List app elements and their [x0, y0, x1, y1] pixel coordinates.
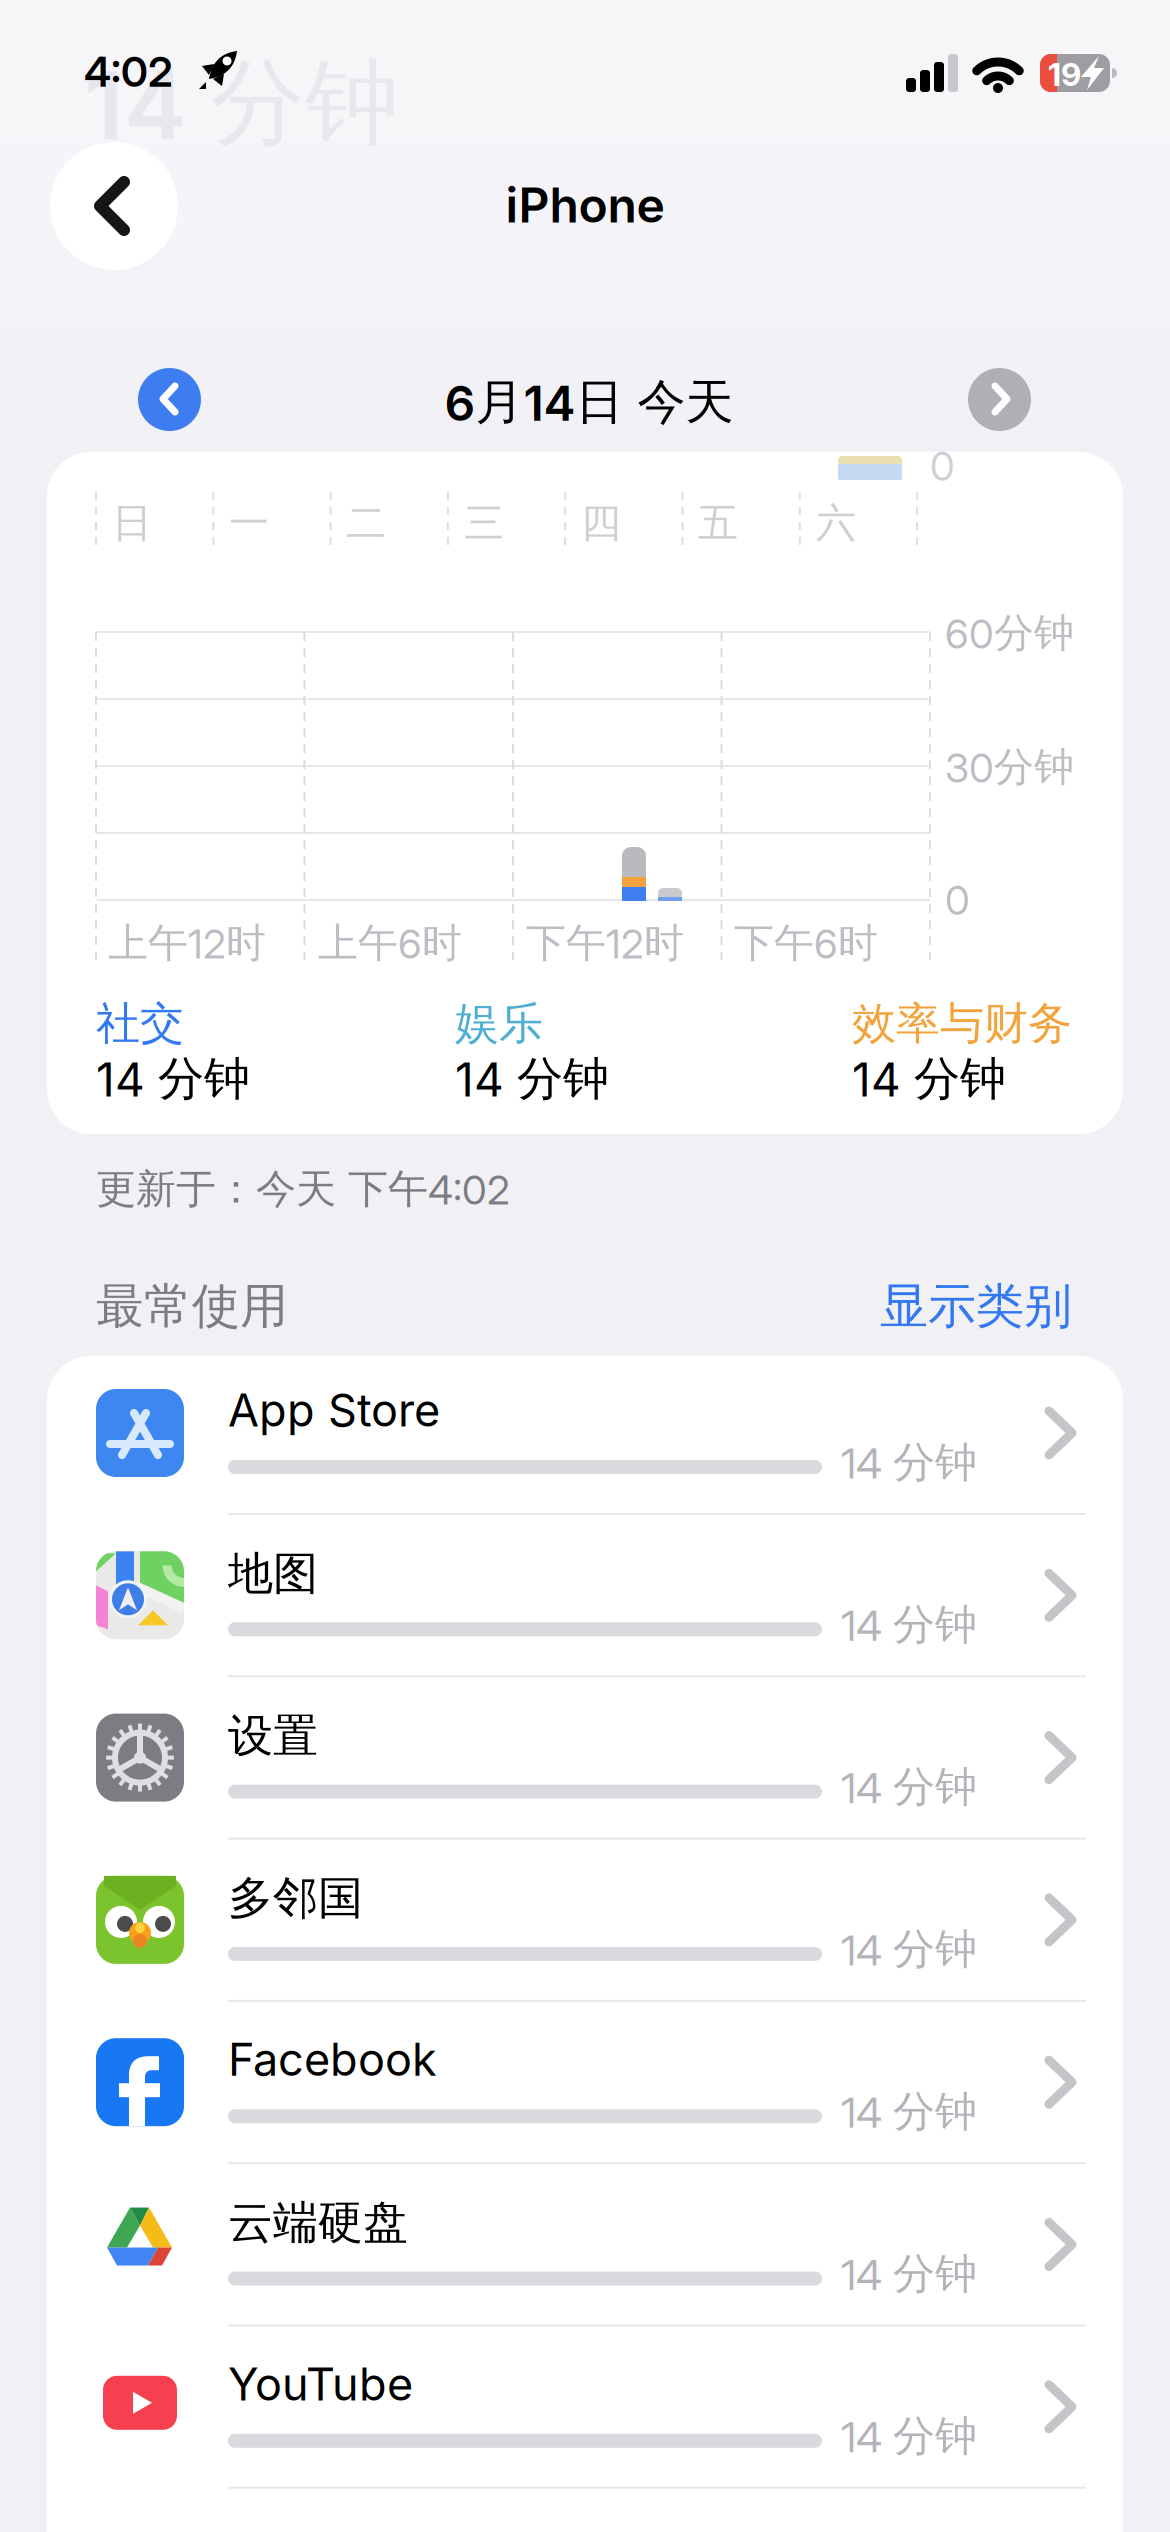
staticText: 设置	[228, 1708, 318, 1764]
staticText: 上午6时	[318, 918, 462, 968]
staticText: 14 分钟	[841, 2410, 977, 2463]
button[interactable]: 后一天	[968, 368, 1031, 431]
button[interactable]: App Store	[47, 1352, 1123, 1514]
staticText: 30分钟	[945, 742, 1074, 792]
button[interactable]: 返回	[50, 142, 178, 270]
staticText: 二	[346, 498, 386, 548]
staticText: 14 分钟	[841, 1436, 977, 1489]
staticText: 60分钟	[945, 608, 1074, 658]
staticText: App Store	[228, 1383, 440, 1437]
button[interactable]: Facebook	[47, 2001, 1123, 2163]
button[interactable]: 前一天	[138, 368, 201, 431]
staticText: 19	[1048, 55, 1081, 94]
staticText: 14 分钟	[455, 1050, 609, 1108]
staticText: 地图	[228, 1545, 318, 1602]
staticText: 14 分钟	[852, 1050, 1006, 1108]
staticText: 六	[816, 498, 856, 548]
staticText: 下午12时	[526, 918, 684, 968]
staticText: 最常使用	[96, 1276, 288, 1336]
staticText: 社交	[96, 996, 184, 1051]
staticText: 0	[930, 442, 955, 490]
staticText: 14 分钟	[841, 1761, 977, 1813]
button[interactable]: YouTube	[47, 2326, 1123, 2488]
staticText: 更新于：今天 下午4:02	[96, 1164, 510, 1214]
staticText: 14 分钟	[841, 2085, 977, 2138]
button[interactable]: 地图	[47, 1514, 1123, 1676]
staticText: 五	[698, 498, 738, 548]
staticText: 下午6时	[734, 918, 878, 968]
staticText: iPhone	[505, 176, 664, 234]
staticText: 14 分钟	[841, 1923, 977, 1976]
staticText: 娱乐	[455, 996, 543, 1051]
button[interactable]: 显示类别	[880, 1276, 1072, 1336]
staticText: 上午12时	[108, 918, 266, 968]
staticText: 显示类别	[880, 1276, 1072, 1336]
staticText: 云端硬盘	[228, 2194, 408, 2251]
staticText: 14 分钟	[96, 1050, 250, 1108]
staticText: 14 分钟	[841, 2247, 977, 2300]
button[interactable]: 设置	[47, 1677, 1123, 1839]
staticText: 效率与财务	[852, 996, 1072, 1051]
staticText: 三	[464, 498, 504, 548]
staticText: 一	[229, 498, 269, 548]
staticText: 四	[581, 498, 621, 548]
button[interactable]: 云端硬盘	[47, 2163, 1123, 2325]
staticText: 6月14日 今天	[444, 372, 733, 432]
staticText: 多邻国	[228, 1870, 363, 1927]
staticText: YouTube	[228, 2357, 413, 2411]
button[interactable]: 多邻国	[47, 1839, 1123, 2001]
staticText: 4:02	[84, 46, 173, 97]
staticText: 0	[945, 876, 970, 924]
staticText: 14 分钟	[841, 1598, 977, 1651]
staticText: Facebook	[228, 2032, 437, 2087]
staticText: 日	[112, 498, 152, 548]
staticText: 14 分钟	[84, 44, 399, 162]
